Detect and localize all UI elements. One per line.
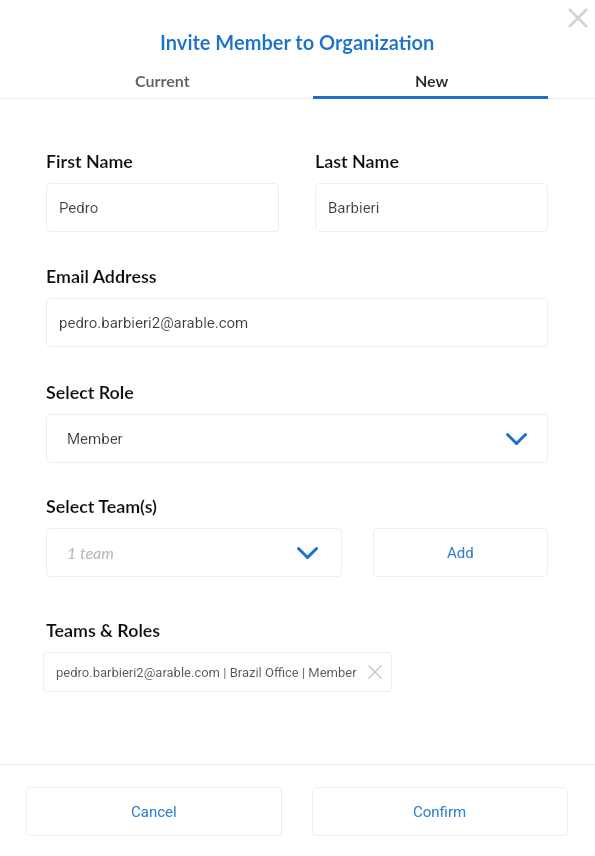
- button[interactable]: Cancel: [26, 787, 282, 836]
- staticText: Pedro: [59, 199, 99, 217]
- staticText: Current: [135, 71, 190, 90]
- staticText: 1 team: [67, 543, 114, 562]
- button[interactable]: Member: [46, 414, 548, 463]
- staticText: Last Name: [315, 150, 399, 171]
- staticText: Email Address: [46, 265, 157, 286]
- button[interactable]: Remove team role: [363, 660, 387, 684]
- button[interactable]: pedro.barbieri2@arable.com | Brazil Offi…: [43, 652, 392, 692]
- staticText: First Name: [46, 150, 133, 171]
- button[interactable]: Current: [46, 65, 279, 95]
- staticText: Cancel: [131, 803, 177, 821]
- button[interactable]: Pedro: [46, 183, 279, 232]
- staticText: Select Team(s): [46, 495, 157, 516]
- staticText: Invite Member to Organization: [160, 30, 435, 54]
- staticText: Confirm: [413, 803, 467, 821]
- staticText: New: [415, 71, 449, 90]
- button[interactable]: pedro.barbieri2@arable.com: [46, 298, 548, 347]
- staticText: Add: [447, 544, 474, 562]
- staticText: pedro.barbieri2@arable.com | Brazil Offi…: [56, 665, 357, 680]
- staticText: Teams & Roles: [46, 619, 161, 640]
- button[interactable]: 1 team: [46, 528, 342, 577]
- staticText: Select Role: [46, 381, 134, 402]
- button[interactable]: Close dialog: [562, 2, 593, 33]
- staticText: pedro.barbieri2@arable.com: [59, 314, 249, 332]
- staticText: Member: [67, 430, 123, 448]
- button[interactable]: Confirm: [312, 787, 568, 836]
- button[interactable]: New: [315, 65, 548, 95]
- button[interactable]: Barbieri: [315, 183, 548, 232]
- staticText: Barbieri: [328, 199, 380, 217]
- button[interactable]: Add: [373, 528, 548, 577]
